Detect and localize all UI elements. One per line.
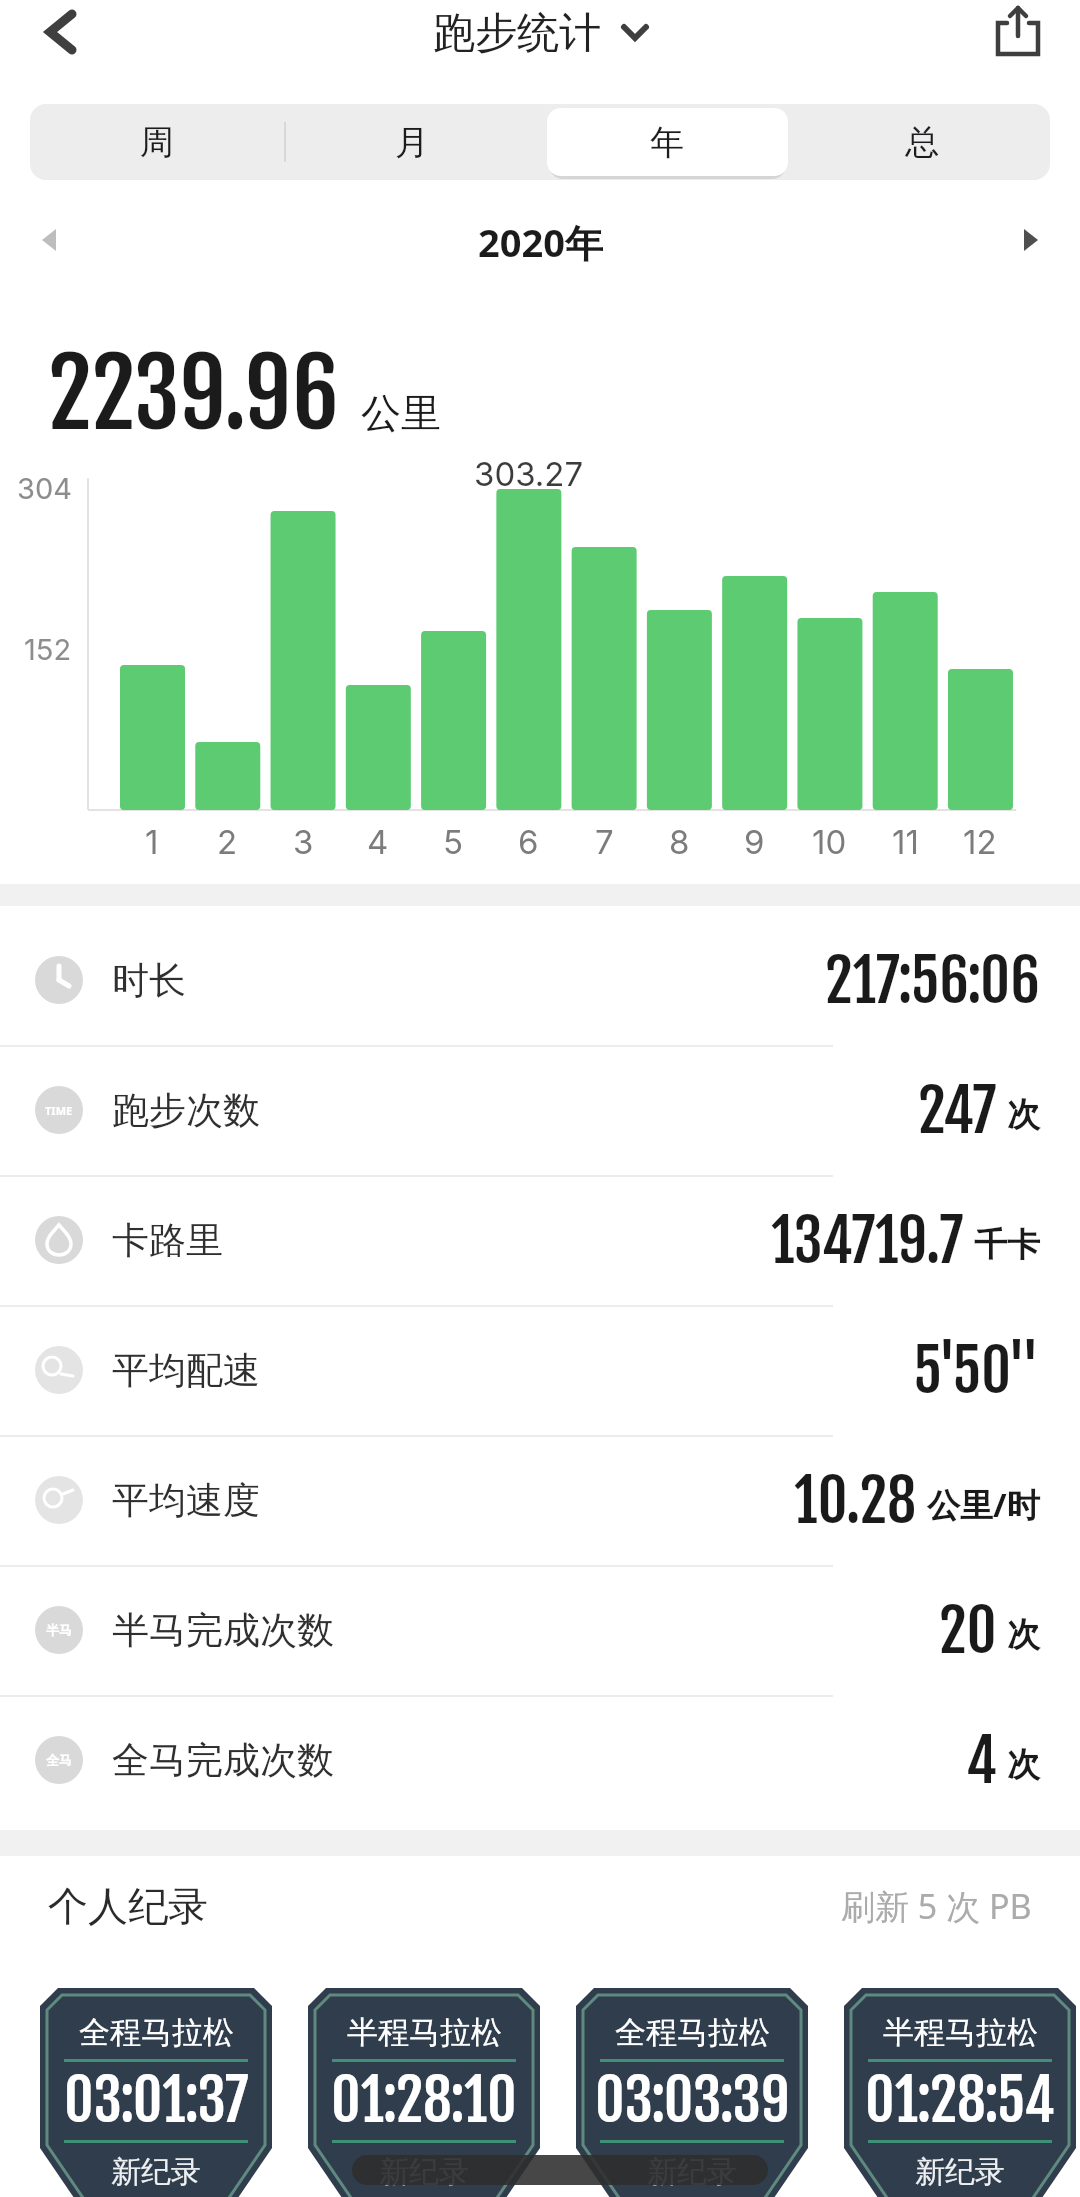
staticText: 全程马拉松 [615,2013,770,2052]
button[interactable]: TIME [0,1045,1080,1175]
staticText: 半马 [46,1622,72,1638]
staticText: 月 [395,121,429,164]
button[interactable]: 全程马拉松 [576,1988,808,2197]
staticText: 10.28 [794,1464,917,1537]
staticText: 个人纪录 [48,1881,208,1931]
button[interactable]: 周 [32,104,282,180]
staticText: 卡路里 [112,1217,223,1264]
staticText: 217:56:06 [825,944,1040,1017]
staticText: 新纪录 [647,2153,737,2191]
staticText: 跑步次数 [112,1087,260,1134]
staticText: 全马完成次数 [112,1737,334,1784]
staticText: 1 [145,822,159,862]
staticText: 总 [905,121,939,164]
button[interactable]: 时长 [0,915,1080,1045]
staticText: 6 [518,822,539,862]
staticText: 新纪录 [111,2153,201,2191]
staticText: 2020年 [478,216,603,264]
staticText: 10 [812,822,847,862]
staticText: 公里 [361,388,441,438]
staticText: 5'50'' [913,1334,1040,1407]
staticText: 03:03:39 [595,2064,790,2128]
staticText: 12 [963,822,997,862]
button[interactable]: 全程马拉松 [40,1988,272,2197]
button[interactable] [990,6,1050,60]
staticText: 全马 [46,1752,72,1768]
button[interactable]: 全马 [0,1695,1080,1825]
button[interactable]: 跑步统计 [433,7,647,59]
staticText: 01:28:10 [331,2064,517,2128]
staticText: 152 [24,632,72,667]
staticText: 2239.96 [48,336,339,452]
button[interactable] [30,8,90,56]
button[interactable]: 年 [542,104,792,180]
staticText: 次 [1007,1094,1040,1136]
staticText: 新纪录 [915,2153,1005,2191]
button[interactable]: 总 [797,104,1047,180]
button[interactable]: 平均配速 [0,1305,1080,1435]
staticText: 时长 [112,957,186,1004]
button[interactable] [1006,218,1054,262]
staticText: 7 [595,822,614,862]
staticText: 公里/时 [927,1482,1040,1527]
staticText: 247 [918,1074,997,1147]
staticText: 01:28:54 [865,2064,1055,2128]
staticText: 次 [1007,1614,1040,1656]
staticText: 3 [293,822,314,862]
staticText: 全程马拉松 [79,2013,234,2052]
staticText: 2 [217,822,238,862]
staticText: 303.27 [474,454,584,494]
button[interactable] [26,218,74,262]
staticText: 新纪录 [379,2153,469,2191]
staticText: 次 [1007,1744,1040,1786]
staticText: 半程马拉松 [883,2013,1038,2052]
button[interactable]: 半马 [0,1565,1080,1695]
button[interactable]: 卡路里 [0,1175,1080,1305]
staticText: 平均配速 [112,1347,260,1394]
staticText: 半马完成次数 [112,1607,334,1654]
staticText: 134719.7 [771,1204,964,1277]
staticText: 年 [650,121,684,164]
staticText: 11 [892,822,919,862]
button[interactable]: 月 [287,104,537,180]
button[interactable]: 半程马拉松 [308,1988,540,2197]
staticText: 刷新 5 次 PB [841,1883,1032,1929]
staticText: 4 [367,822,389,862]
staticText: 平均速度 [112,1477,260,1524]
staticText: 8 [669,822,690,862]
staticText: 千卡 [974,1224,1040,1266]
staticText: TIME [45,1103,73,1118]
staticText: 20 [939,1594,997,1667]
staticText: 周 [140,121,174,164]
staticText: 9 [744,822,765,862]
staticText: 304 [17,471,72,506]
staticText: 半程马拉松 [347,2013,502,2052]
staticText: 03:01:37 [64,2064,249,2128]
button[interactable]: 平均速度 [0,1435,1080,1565]
staticText: 跑步统计 [433,7,601,59]
staticText: 4 [966,1724,997,1797]
staticText: 5 [443,822,464,862]
button[interactable]: 半程马拉松 [844,1988,1076,2197]
